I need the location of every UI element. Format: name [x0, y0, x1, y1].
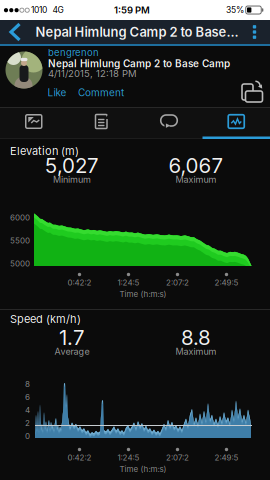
- staticText: 1010: [31, 5, 47, 15]
- staticText: 2: [25, 418, 30, 428]
- button[interactable]: More options: [246, 22, 263, 42]
- button[interactable]: Comment: [75, 83, 127, 102]
- staticText: 5500: [10, 236, 30, 245]
- staticText: 4: [25, 405, 30, 415]
- staticText: 2:49:5: [214, 278, 238, 287]
- staticText: Maximum: [175, 346, 216, 357]
- staticText: Nepal Himlung Camp 2 to Base Camp: [48, 57, 230, 70]
- staticText: 4/11/2015, 12:18 PM: [48, 68, 137, 79]
- staticText: 4G: [52, 5, 63, 15]
- staticText: 0: [25, 431, 30, 441]
- staticText: Nepal Himlung Camp 2 to Base...: [35, 24, 238, 40]
- staticText: 2:07:2: [166, 453, 189, 462]
- staticText: Minimum: [53, 174, 91, 185]
- button[interactable]: Snapshot: [2, 107, 66, 135]
- staticText: 5,027: [45, 153, 99, 178]
- staticText: 1:24:5: [117, 278, 139, 287]
- staticText: 5000: [10, 259, 30, 268]
- staticText: Average: [54, 346, 89, 357]
- staticText: Elevation (m): [10, 144, 79, 158]
- staticText: bengrenon: [48, 47, 99, 58]
- staticText: 8: [25, 379, 30, 389]
- staticText: Maximum: [175, 174, 216, 185]
- staticText: 6: [25, 392, 30, 402]
- staticText: 0:42:2: [67, 453, 91, 462]
- staticText: Time (h:m:s): [119, 289, 166, 299]
- staticText: 2:07:2: [166, 278, 189, 287]
- staticText: 35%: [226, 5, 244, 15]
- button[interactable]: Details: [69, 107, 133, 135]
- staticText: 6,067: [168, 153, 223, 178]
- staticText: 8.8: [181, 325, 211, 350]
- staticText: 2:49:5: [214, 453, 238, 462]
- button[interactable]: Compare: [239, 79, 265, 105]
- staticText: Comment: [78, 86, 124, 99]
- staticText: 0:42:2: [67, 278, 91, 287]
- staticText: 1.7: [59, 325, 85, 350]
- button[interactable]: Charts: [204, 107, 268, 135]
- button[interactable]: Back: [1, 20, 30, 44]
- staticText: 6000: [10, 213, 30, 222]
- staticText: Like: [47, 86, 66, 99]
- staticText: Speed (km/h): [10, 312, 81, 326]
- button[interactable]: Laps: [137, 107, 201, 135]
- staticText: 1:59 PM: [114, 4, 150, 16]
- staticText: Time (h:m:s): [119, 464, 166, 474]
- staticText: 1:24:5: [117, 453, 139, 462]
- button[interactable]: Like: [44, 83, 69, 102]
